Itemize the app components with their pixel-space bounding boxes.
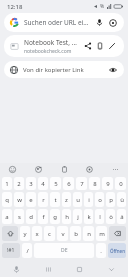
button[interactable]: p: [106, 192, 115, 207]
button[interactable]: Clipboard: [59, 164, 70, 175]
button[interactable]: u: [73, 192, 82, 207]
staticText: y: [23, 230, 27, 238]
staticText: s: [18, 213, 21, 221]
button[interactable]: s: [14, 209, 24, 224]
staticText: 2: [17, 180, 21, 188]
staticText: ö: [109, 213, 113, 221]
staticText: 1: [5, 180, 9, 188]
staticText: k: [87, 213, 91, 221]
staticText: %: [100, 3, 105, 10]
button[interactable]: v: [57, 226, 68, 241]
button[interactable]: Share: [82, 40, 94, 52]
button[interactable]: ü: [117, 192, 126, 207]
button[interactable]: Öffnen: [108, 243, 126, 258]
staticText: Von dir kopierter Link: [23, 66, 107, 74]
button[interactable]: i: [84, 192, 93, 207]
button[interactable]: !#1: [2, 243, 20, 258]
button[interactable]: Send to device: [94, 40, 106, 52]
button[interactable]: Shift: [2, 226, 18, 241]
staticText: m: [99, 230, 105, 238]
button[interactable]: Suchen oder URL eingeben: [4, 13, 124, 32]
button[interactable]: f: [38, 209, 48, 224]
staticText: Notebook Test, Lapto…: [24, 38, 80, 47]
staticText: ä: [120, 213, 124, 221]
button[interactable]: 4: [38, 177, 48, 190]
button[interactable]: 5: [50, 177, 61, 190]
button[interactable]: y: [20, 226, 30, 241]
button[interactable]: l: [95, 209, 104, 224]
button[interactable]: Voice search: [94, 17, 105, 28]
button[interactable]: r: [38, 192, 48, 207]
button[interactable]: b: [70, 226, 81, 241]
staticText: v: [61, 230, 65, 238]
button[interactable]: w: [14, 192, 24, 207]
button[interactable]: 1: [2, 177, 12, 190]
button[interactable]: z: [62, 192, 71, 207]
staticText: Suchen oder URL eingeben: [24, 18, 91, 27]
staticText: .: [100, 247, 102, 255]
button[interactable]: Backspace: [109, 226, 126, 241]
button[interactable]: t: [50, 192, 60, 207]
button[interactable]: 2: [14, 177, 24, 190]
button[interactable]: o: [95, 192, 104, 207]
button[interactable]: 8: [89, 177, 100, 190]
staticText: 9: [106, 180, 110, 188]
button[interactable]: d: [26, 209, 36, 224]
button[interactable]: c: [44, 226, 55, 241]
button[interactable]: Settings: [84, 164, 95, 175]
button[interactable]: h: [62, 209, 71, 224]
staticText: b: [74, 230, 78, 238]
button[interactable]: Emoji: [7, 164, 18, 175]
staticText: 12:18: [7, 3, 23, 11]
staticText: c: [48, 230, 51, 238]
button[interactable]: .: [96, 243, 106, 258]
button[interactable]: 3: [26, 177, 36, 190]
staticText: z: [65, 196, 68, 204]
staticText: 5: [54, 180, 58, 188]
button[interactable]: m: [96, 226, 107, 241]
button[interactable]: j: [73, 209, 82, 224]
button[interactable]: 6: [63, 177, 74, 190]
staticText: p: [109, 196, 113, 204]
button[interactable]: Hide keyboard: [105, 263, 118, 276]
staticText: a: [5, 213, 9, 221]
button[interactable]: Stickers: [33, 164, 44, 175]
staticText: !#1: [7, 247, 15, 254]
staticText: Öffnen: [110, 248, 125, 254]
staticText: 7: [80, 180, 84, 188]
button[interactable]: Recent apps: [42, 263, 55, 276]
staticText: o: [98, 196, 102, 204]
button[interactable]: More options: [110, 164, 121, 175]
button[interactable]: x: [32, 226, 42, 241]
button[interactable]: Voice input: [10, 263, 23, 276]
button[interactable]: Von dir kopierter Link: [4, 61, 124, 78]
staticText: ü: [120, 196, 124, 204]
button[interactable]: /: [22, 243, 32, 258]
button[interactable]: Home: [73, 263, 86, 276]
staticText: t: [54, 196, 57, 204]
button[interactable]: 7: [76, 177, 87, 190]
staticText: f: [42, 213, 45, 221]
button[interactable]: ä: [117, 209, 126, 224]
staticText: DE: [61, 247, 68, 254]
button[interactable]: e: [26, 192, 36, 207]
button[interactable]: DE: [34, 243, 94, 258]
staticText: 6: [67, 180, 71, 188]
button[interactable]: Notebook Test, Lapto…: [4, 35, 124, 57]
button[interactable]: Edit: [106, 40, 118, 52]
staticText: /: [26, 247, 29, 255]
button[interactable]: 9: [102, 177, 113, 190]
button[interactable]: Preview: [107, 64, 118, 75]
staticText: j: [77, 213, 79, 221]
staticText: n: [87, 230, 91, 238]
button[interactable]: g: [50, 209, 60, 224]
button[interactable]: Google Lens: [107, 17, 118, 28]
button[interactable]: k: [84, 209, 93, 224]
button[interactable]: 0: [115, 177, 126, 190]
staticText: d: [29, 213, 33, 221]
button[interactable]: n: [83, 226, 94, 241]
button[interactable]: a: [2, 209, 12, 224]
button[interactable]: q: [2, 192, 12, 207]
staticText: e: [29, 196, 33, 204]
button[interactable]: ö: [106, 209, 115, 224]
